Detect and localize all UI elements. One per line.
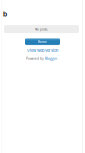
button[interactable]: Home <box>25 38 60 45</box>
staticText: No posts. <box>35 27 48 31</box>
staticText: b <box>3 10 7 18</box>
staticText: Home <box>38 39 47 44</box>
button[interactable]: View web version <box>27 48 58 53</box>
staticText: View web version <box>27 48 58 53</box>
button[interactable]: Blogger <box>45 56 57 60</box>
staticText: Blogger <box>45 56 57 60</box>
staticText: . <box>58 56 59 60</box>
staticText: Powered by <box>26 56 44 60</box>
